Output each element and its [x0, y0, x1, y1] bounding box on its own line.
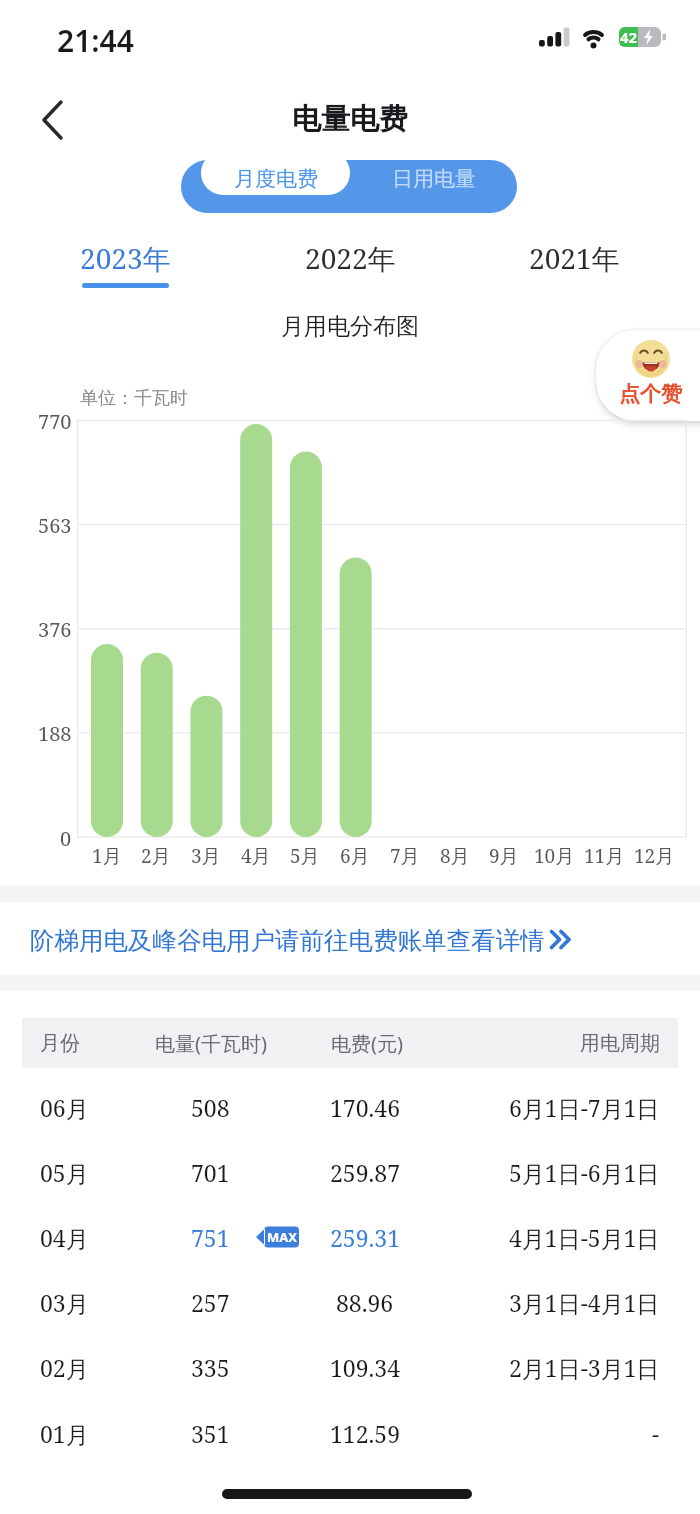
- staticText: 05月: [40, 1157, 89, 1188]
- button[interactable]: [0, 1347, 700, 1391]
- button[interactable]: 2022年: [285, 238, 415, 278]
- staticText: 5月: [290, 843, 320, 868]
- staticText: 4月1日-5月1日: [509, 1222, 660, 1253]
- staticText: 12月: [634, 843, 675, 868]
- button[interactable]: [0, 1217, 700, 1261]
- staticText: 112.59: [330, 1418, 401, 1449]
- staticText: 109.34: [330, 1352, 401, 1383]
- staticText: 10月: [534, 843, 575, 868]
- staticText: 8月: [440, 843, 470, 868]
- staticText: 0: [60, 825, 72, 849]
- staticText: 42: [620, 27, 638, 47]
- button[interactable]: [201, 151, 350, 195]
- staticText: 单位：千瓦时: [80, 387, 188, 409]
- staticText: 9月: [489, 843, 519, 868]
- staticText: 259.31: [330, 1222, 401, 1253]
- button[interactable]: 日用电量: [350, 160, 517, 197]
- staticText: 2021年: [529, 239, 620, 277]
- staticText: 2月: [141, 843, 171, 868]
- button[interactable]: 点个赞: [596, 330, 700, 421]
- staticText: 88.96: [336, 1287, 394, 1318]
- staticText: 阶梯用电及峰谷电用户请前往电费账单查看详情: [30, 925, 545, 955]
- staticText: 257: [191, 1287, 230, 1318]
- staticText: 335: [191, 1352, 230, 1383]
- staticText: 2023年: [80, 239, 171, 277]
- staticText: 2022年: [305, 239, 396, 277]
- staticText: 1月: [92, 843, 122, 868]
- staticText: 6月: [340, 843, 370, 868]
- staticText: -: [652, 1418, 660, 1449]
- staticText: 月份: [40, 1031, 80, 1056]
- staticText: 351: [191, 1418, 230, 1449]
- staticText: 电量电费: [292, 101, 408, 138]
- staticText: 用电周期: [580, 1031, 660, 1056]
- staticText: 21:44: [57, 20, 134, 54]
- staticText: 03月: [40, 1287, 89, 1318]
- staticText: 170.46: [330, 1092, 401, 1123]
- staticText: 电量(千瓦时): [155, 1030, 267, 1057]
- staticText: 点个赞: [619, 381, 682, 407]
- staticText: 日用电量: [392, 166, 476, 192]
- staticText: 7月: [390, 843, 420, 868]
- staticText: 11月: [584, 843, 625, 868]
- button[interactable]: [30, 94, 76, 144]
- staticText: 4月: [241, 843, 271, 868]
- staticText: 188: [38, 720, 72, 744]
- button[interactable]: [0, 1087, 700, 1131]
- staticText: 508: [191, 1092, 230, 1123]
- staticText: 月度电费: [234, 166, 318, 192]
- staticText: 2月1日-3月1日: [509, 1352, 660, 1383]
- staticText: 259.87: [330, 1157, 401, 1188]
- button[interactable]: [0, 1152, 700, 1196]
- staticText: 06月: [40, 1092, 89, 1123]
- staticText: 701: [191, 1157, 230, 1188]
- staticText: 3月1日-4月1日: [509, 1287, 660, 1318]
- staticText: 5月1日-6月1日: [509, 1157, 660, 1188]
- button[interactable]: 2021年: [509, 238, 639, 278]
- staticText: 3月: [191, 843, 221, 868]
- staticText: 04月: [40, 1222, 89, 1253]
- button[interactable]: [0, 1282, 700, 1326]
- staticText: 6月1日-7月1日: [509, 1092, 660, 1123]
- staticText: 751: [191, 1222, 230, 1253]
- staticText: 770: [38, 408, 72, 432]
- staticText: 01月: [40, 1418, 89, 1449]
- staticText: 02月: [40, 1352, 89, 1383]
- button[interactable]: 2023年: [60, 238, 190, 278]
- staticText: 563: [38, 512, 72, 536]
- staticText: MAX: [267, 1228, 297, 1246]
- staticText: 月用电分布图: [281, 312, 419, 340]
- staticText: 376: [38, 616, 72, 640]
- button[interactable]: 阶梯用电及峰谷电用户请前往电费账单查看详情: [0, 915, 700, 965]
- staticText: 电费(元): [331, 1030, 403, 1057]
- button[interactable]: [0, 1413, 700, 1457]
